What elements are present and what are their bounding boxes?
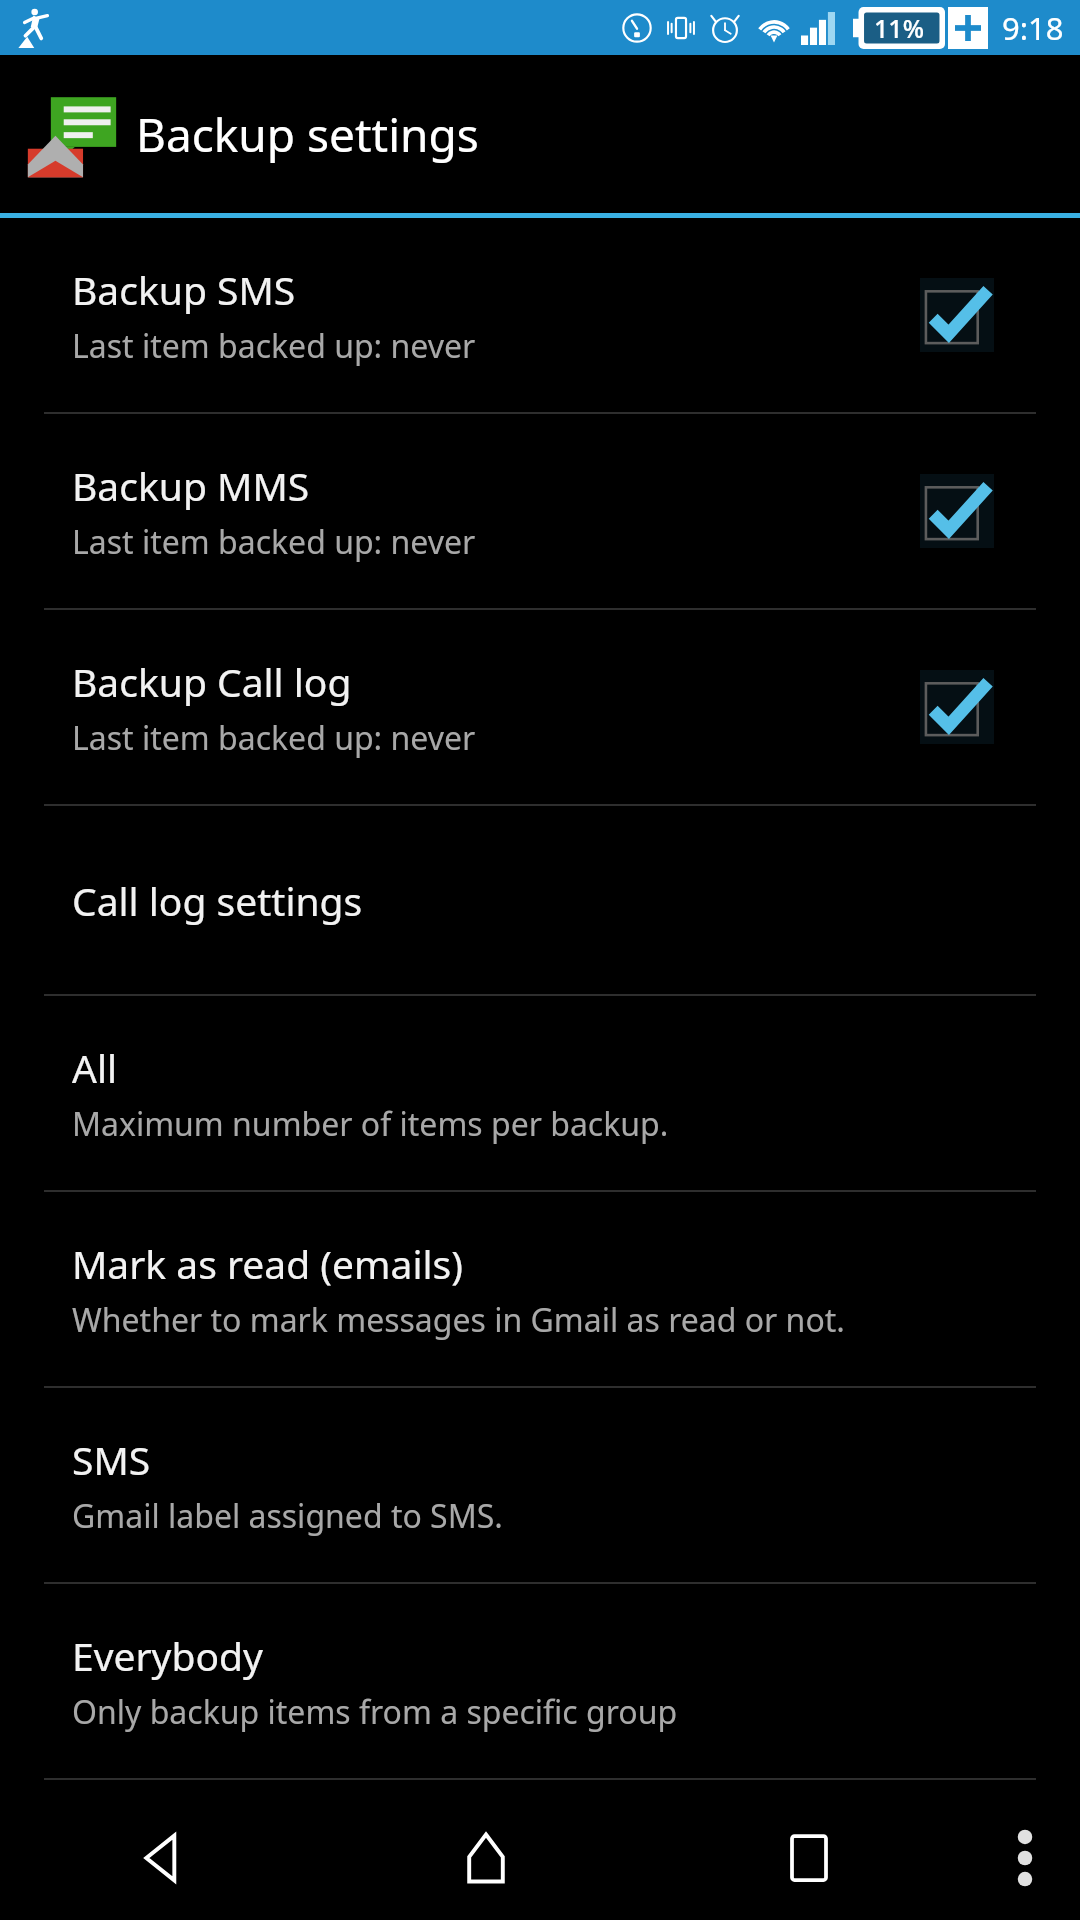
button[interactable]: More options <box>970 1795 1080 1920</box>
button[interactable]: SMS <box>0 1388 1080 1582</box>
button[interactable]: Recent apps <box>647 1795 970 1920</box>
staticText: 11% <box>874 11 924 45</box>
staticText: Backup SMS <box>72 263 296 316</box>
staticText: Backup MMS <box>72 459 310 512</box>
staticText: Last item backed up: never <box>72 324 476 368</box>
button[interactable]: Backup Call log <box>0 610 1080 804</box>
button[interactable]: Back <box>0 1795 324 1920</box>
button[interactable]: Backup MMS <box>0 414 1080 608</box>
staticText: Last item backed up: never <box>72 520 476 564</box>
button[interactable]: Home <box>324 1795 647 1920</box>
staticText: Call log settings <box>72 874 363 927</box>
staticText: Backup Call log <box>72 655 352 708</box>
button[interactable]: Mark as read (emails) <box>0 1192 1080 1386</box>
button[interactable]: Backup SMS <box>0 218 1080 412</box>
staticText: SMS <box>72 1433 151 1486</box>
staticText: Mark as read (emails) <box>72 1237 463 1290</box>
button[interactable]: All <box>0 996 1080 1190</box>
staticText: Backup settings <box>136 103 479 166</box>
staticText: Maximum number of items per backup. <box>72 1102 669 1146</box>
staticText: Gmail label assigned to SMS. <box>72 1494 503 1538</box>
button[interactable]: Everybody <box>0 1584 1080 1778</box>
staticText: Last item backed up: never <box>72 716 476 760</box>
staticText: 9:18 <box>1002 7 1064 49</box>
button[interactable]: Call log settings <box>0 806 1080 994</box>
staticText: Everybody <box>72 1629 263 1682</box>
staticText: All <box>72 1041 118 1094</box>
staticText: Whether to mark messages in Gmail as rea… <box>72 1298 845 1342</box>
staticText: Only backup items from a specific group <box>72 1690 678 1734</box>
